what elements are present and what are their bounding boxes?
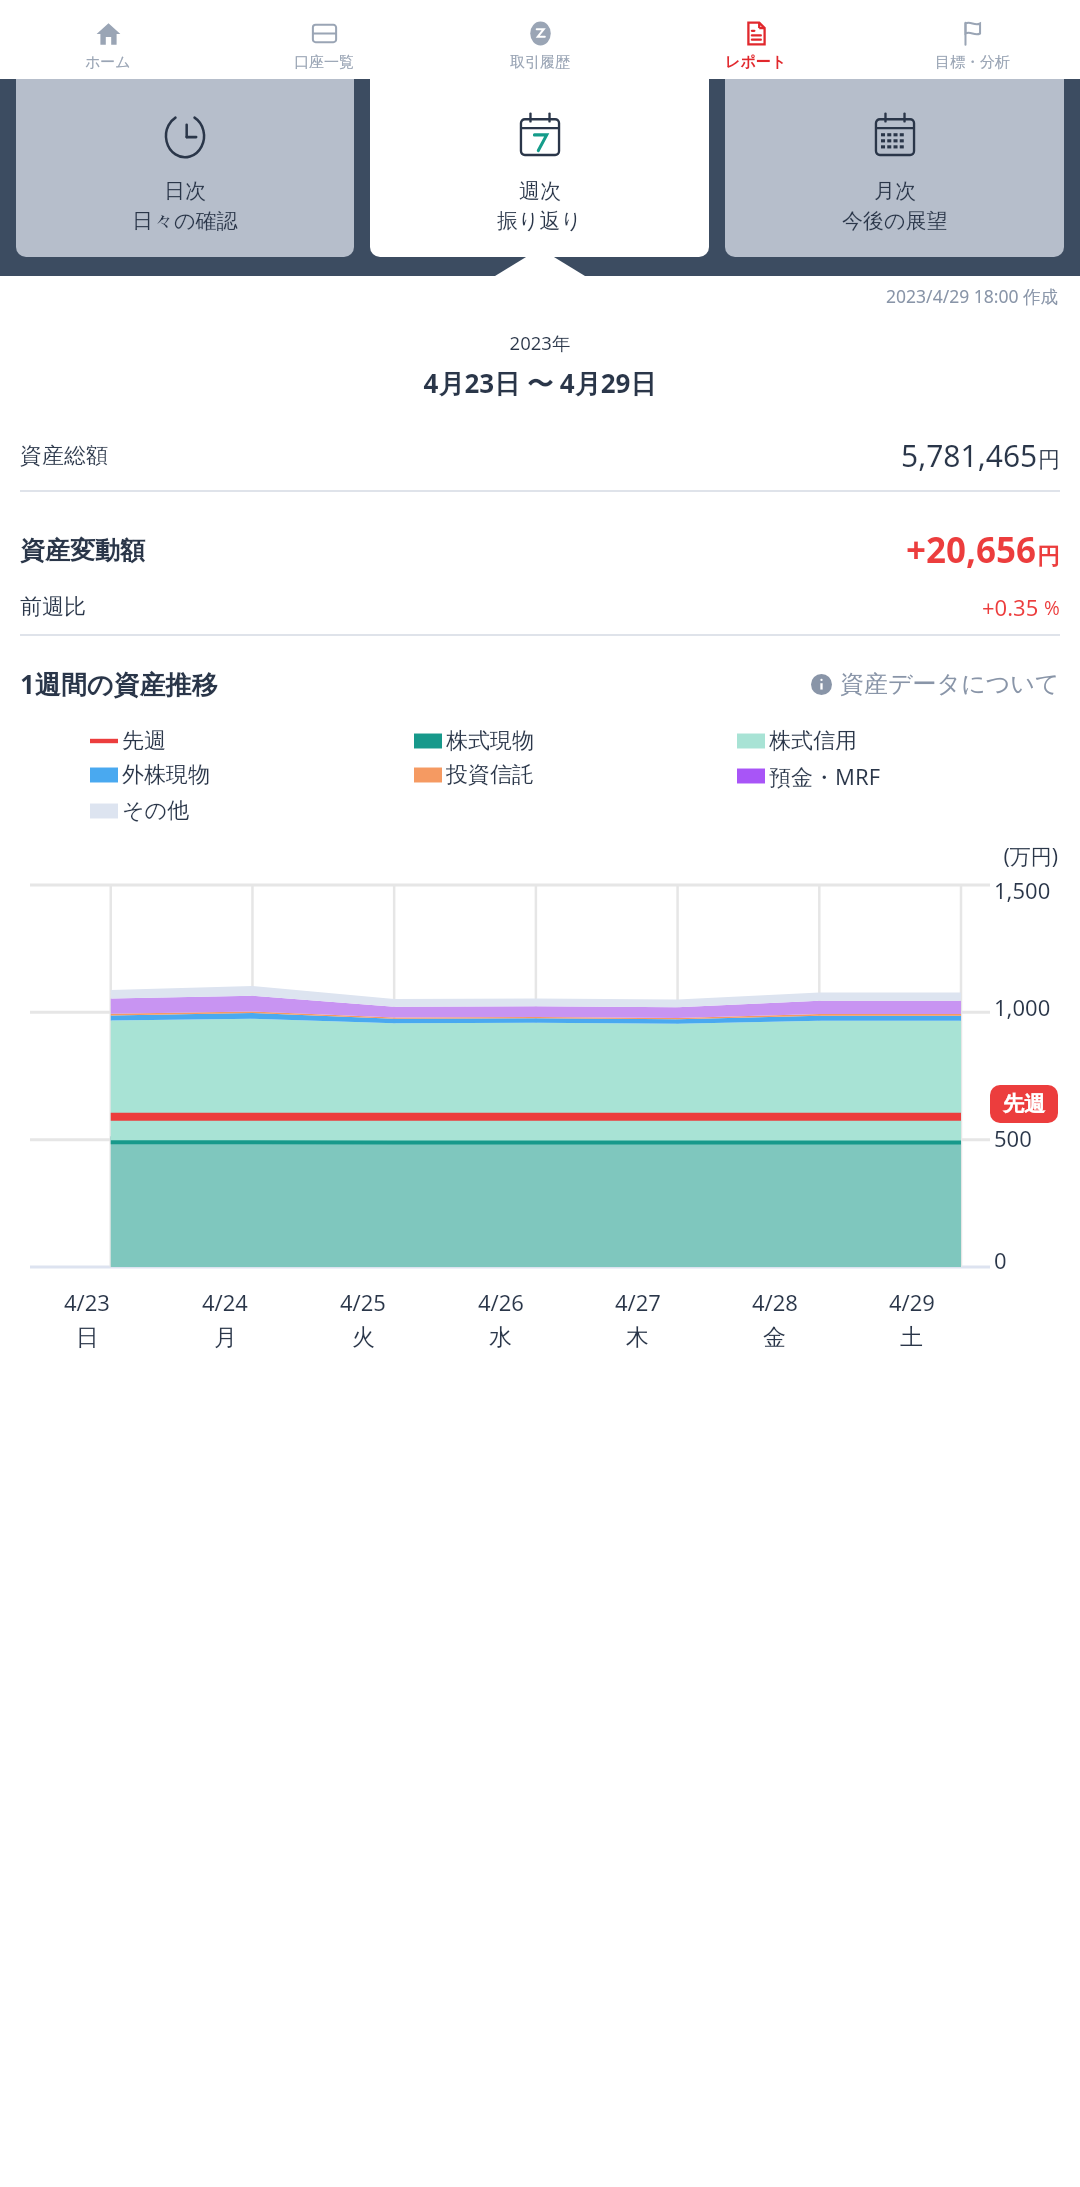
staticText: 円: [1038, 446, 1060, 474]
staticText: 資産変動額: [20, 535, 145, 566]
staticText: 株式現物: [446, 727, 534, 755]
other: 情報: [811, 674, 832, 695]
button[interactable]: 前週比: [20, 592, 1060, 622]
staticText: 4月23日 〜 4月29日: [0, 365, 1080, 401]
staticText: 週次: [519, 178, 561, 204]
staticText: 預金・MRF: [769, 761, 881, 791]
staticText: 先週: [1003, 1091, 1045, 1117]
button[interactable]: 口座一覧: [216, 12, 432, 79]
staticText: 株式信用: [769, 727, 857, 755]
staticText: 金: [763, 1323, 786, 1352]
staticText: 資産総額: [20, 442, 108, 470]
staticText: その他: [122, 797, 190, 825]
staticText: 2023/4/29 18:00 作成: [0, 284, 1058, 308]
staticText: 今後の展望: [842, 208, 948, 234]
staticText: 4/27: [615, 1287, 661, 1317]
staticText: 木: [626, 1323, 649, 1352]
button[interactable]: 資産総額: [20, 435, 1060, 476]
staticText: 4/23: [64, 1287, 110, 1317]
staticText: レポート: [725, 53, 787, 72]
staticText: 月: [214, 1323, 237, 1352]
staticText: %: [1039, 595, 1060, 621]
staticText: 日次: [164, 178, 206, 204]
staticText: (万円): [0, 842, 1058, 871]
staticText: 4/24: [202, 1287, 248, 1317]
button[interactable]: 目標・分析: [864, 12, 1080, 79]
staticText: 日: [76, 1323, 99, 1352]
button[interactable]: 日次: [16, 79, 354, 257]
button[interactable]: レポート: [648, 12, 864, 79]
staticText: 先週: [122, 727, 166, 755]
staticText: 振り返り: [497, 208, 582, 234]
staticText: 4/28: [752, 1287, 798, 1317]
staticText: 月次: [874, 178, 916, 204]
staticText: 土: [900, 1323, 923, 1352]
button[interactable]: 週次: [370, 79, 709, 257]
staticText: 1,500: [994, 875, 1051, 905]
staticText: 4/26: [478, 1287, 524, 1317]
staticText: 円: [1037, 542, 1060, 571]
staticText: 1週間の資産推移: [20, 666, 218, 702]
staticText: +0.35: [982, 592, 1039, 622]
staticText: 500: [994, 1123, 1032, 1153]
button[interactable]: ホーム: [0, 12, 216, 79]
staticText: 投資信託: [446, 761, 534, 789]
staticText: 4/29: [889, 1287, 935, 1317]
staticText: 前週比: [20, 593, 86, 621]
staticText: 1,000: [994, 992, 1051, 1022]
staticText: 0: [994, 1245, 1007, 1275]
button[interactable]: 情報: [811, 669, 1060, 699]
staticText: 目標・分析: [935, 53, 1010, 72]
staticText: 口座一覧: [294, 53, 354, 72]
button[interactable]: 先週: [990, 1085, 1058, 1123]
staticText: 2023年: [0, 330, 1080, 355]
staticText: ホーム: [85, 53, 131, 72]
staticText: 外株現物: [122, 761, 210, 789]
button[interactable]: 月次: [725, 79, 1064, 257]
staticText: 4/25: [340, 1287, 386, 1317]
staticText: +20,656: [906, 526, 1037, 574]
button[interactable]: 取引履歴: [432, 12, 648, 79]
button[interactable]: 資産変動額: [20, 526, 1060, 574]
staticText: 5,781,465: [901, 435, 1038, 476]
staticText: 取引履歴: [510, 53, 570, 72]
staticText: 水: [489, 1323, 512, 1352]
staticText: 火: [352, 1323, 375, 1352]
staticText: 資産データについて: [840, 669, 1060, 699]
staticText: 日々の確認: [132, 208, 238, 234]
